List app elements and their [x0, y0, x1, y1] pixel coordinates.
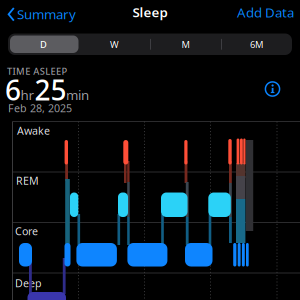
button[interactable]: D [8, 38, 79, 51]
staticText: Sleep [132, 3, 167, 21]
button[interactable]: Summary [7, 5, 82, 22]
staticText: Feb 28, 2025 [8, 101, 72, 115]
staticText: min [66, 86, 89, 104]
staticText: TIME ASLEEP [7, 65, 67, 77]
button[interactable] [10, 35, 78, 53]
staticText: W [110, 38, 119, 51]
button[interactable]: Add Data [237, 3, 294, 21]
staticText: Summary [17, 5, 76, 23]
button[interactable] [265, 81, 281, 97]
staticText: D [40, 38, 47, 51]
button[interactable]: 6M [221, 38, 292, 51]
staticText: 25 [34, 71, 66, 108]
staticText: Add Data [237, 3, 294, 21]
staticText: Deep [15, 276, 42, 290]
staticText: Awake [17, 123, 50, 138]
staticText: REM [16, 173, 39, 188]
staticText: 6 [5, 71, 21, 108]
button[interactable]: W [79, 38, 150, 51]
staticText: hr [20, 86, 34, 104]
staticText: 6M [250, 38, 263, 51]
staticText: M [181, 38, 189, 51]
button[interactable]: M [150, 38, 221, 51]
staticText: Core [15, 224, 38, 238]
